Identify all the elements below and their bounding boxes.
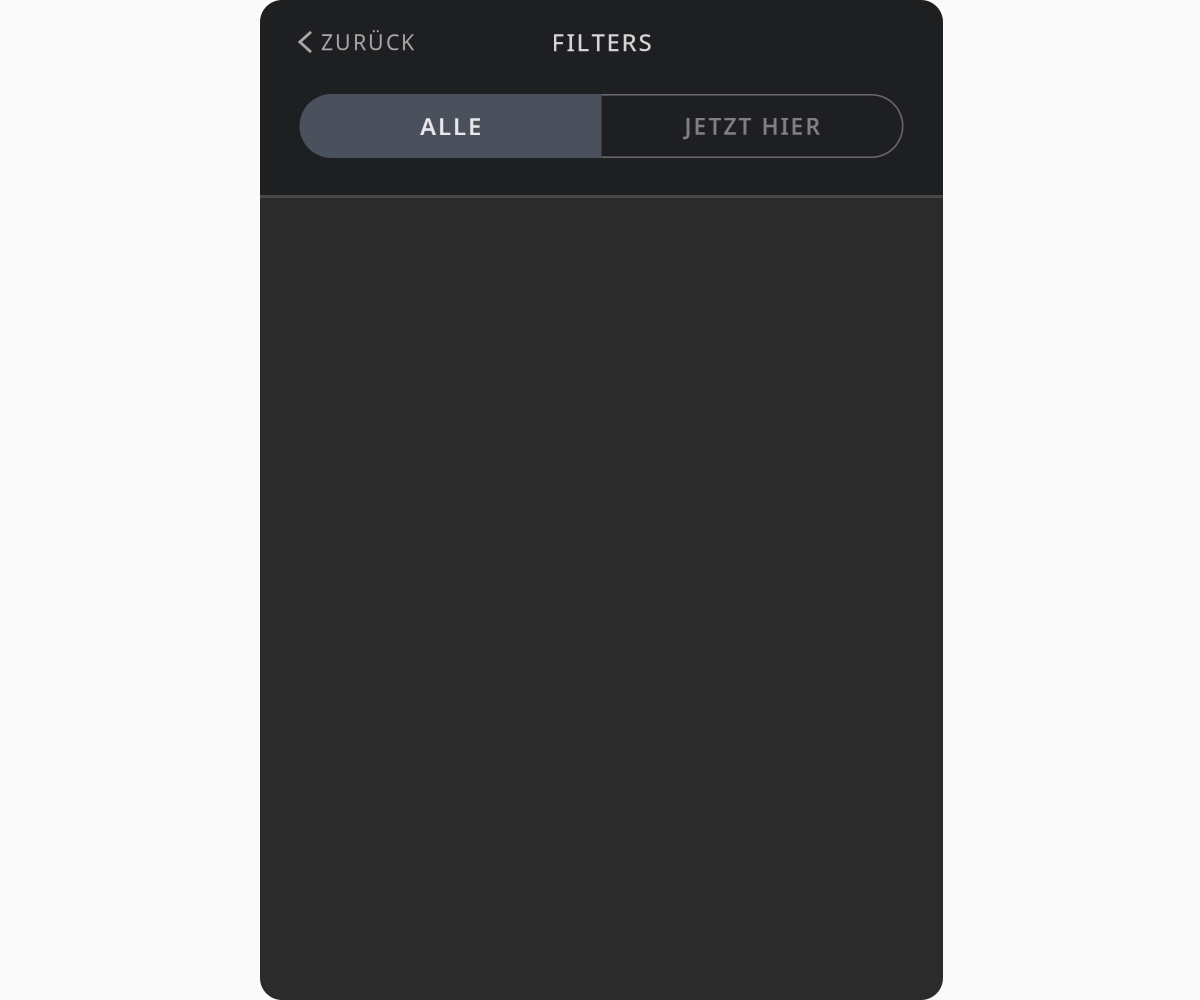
button[interactable]: Jetzt hier (601, 94, 903, 158)
button[interactable]: Zurück (260, 20, 430, 64)
staticText: F I L T E R S (551, 26, 651, 58)
button[interactable]: Alle (299, 94, 601, 158)
